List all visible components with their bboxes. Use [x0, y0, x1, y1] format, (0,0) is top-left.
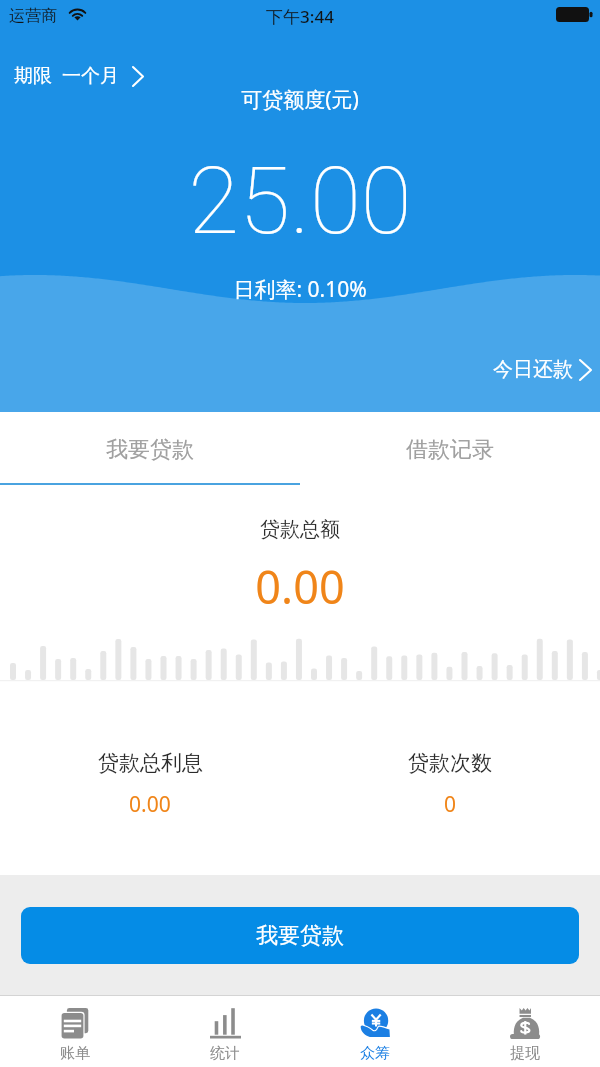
button[interactable]: 今日还款: [493, 357, 592, 382]
staticText: 借款记录: [406, 436, 494, 464]
staticText: 运营商: [9, 6, 57, 26]
staticText: 期限: [14, 64, 52, 88]
staticText: 贷款总利息: [98, 750, 203, 776]
staticText: 账单: [60, 1044, 90, 1063]
staticText: 可贷额度(元): [0, 85, 600, 114]
staticText: 我要贷款: [106, 436, 194, 464]
staticText: 贷款总额: [0, 517, 600, 542]
staticText: 统计: [210, 1044, 240, 1063]
staticText: 下午3:44: [0, 5, 600, 28]
other: 统计: [210, 1008, 241, 1039]
staticText: 提现: [510, 1044, 540, 1063]
button[interactable]: 账单: [0, 995, 150, 1067]
staticText: 众筹: [360, 1044, 390, 1063]
staticText: 贷款次数: [408, 750, 492, 776]
staticText: 一个月: [62, 64, 119, 88]
button[interactable]: 提现: [450, 995, 600, 1067]
other: 众筹: [360, 1008, 391, 1039]
staticText: 我要贷款: [256, 922, 344, 950]
button[interactable]: 统计: [150, 995, 300, 1067]
other: 提现: [510, 1008, 541, 1039]
staticText: 25.00: [0, 147, 600, 256]
button[interactable]: 众筹: [300, 995, 450, 1067]
other: 账单: [60, 1008, 91, 1039]
staticText: 日利率: 0.10%: [0, 275, 600, 304]
button[interactable]: 期限: [14, 64, 144, 88]
staticText: 今日还款: [493, 357, 573, 382]
staticText: 0: [444, 790, 457, 819]
staticText: 0.00: [129, 790, 171, 819]
button[interactable]: 借款记录: [300, 412, 600, 486]
staticText: 0.00: [0, 556, 600, 617]
button[interactable]: 我要贷款: [0, 412, 300, 486]
button[interactable]: 我要贷款: [21, 907, 579, 964]
